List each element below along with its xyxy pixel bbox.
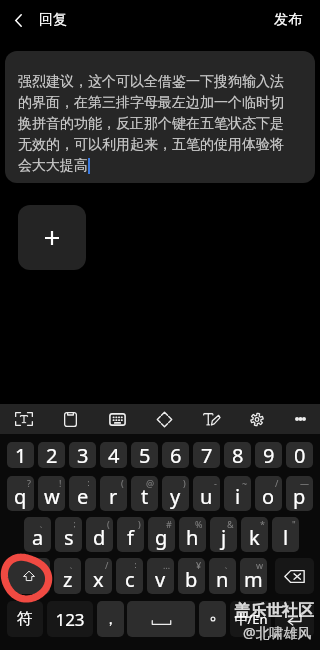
button[interactable]: ： — [116, 558, 143, 594]
button[interactable]: 0 — [286, 442, 313, 468]
staticText: ， — [103, 610, 118, 629]
button[interactable]: Add image — [18, 205, 86, 270]
button[interactable]: Period — [199, 601, 226, 637]
staticText: d — [93, 524, 106, 551]
staticText: 3 — [77, 442, 89, 468]
button[interactable]: … — [147, 558, 174, 594]
staticText: v — [155, 566, 166, 593]
button[interactable]: 123 — [47, 601, 93, 637]
staticText: k — [249, 524, 260, 551]
staticText: 、 — [224, 559, 233, 570]
button[interactable]: @ — [131, 476, 158, 511]
staticText: ( — [107, 518, 110, 530]
button[interactable]: # — [148, 517, 175, 552]
button[interactable]: 5 — [131, 442, 158, 468]
staticText: ¥ — [196, 559, 202, 571]
staticText: 8 — [232, 442, 244, 468]
button[interactable]: / — [255, 476, 282, 511]
staticText: — — [300, 477, 310, 489]
button[interactable]: Text recognition — [7, 404, 41, 434]
button[interactable]: 6 — [162, 442, 189, 468]
staticText: ： — [131, 559, 140, 570]
staticText: h — [186, 524, 199, 551]
staticText: 中/En — [234, 610, 268, 628]
button[interactable]: 符 — [7, 601, 43, 637]
button[interactable]: & — [210, 517, 237, 552]
button[interactable]: — — [286, 476, 313, 511]
staticText: ( — [121, 477, 124, 489]
button[interactable]: More — [283, 404, 317, 434]
button[interactable]: ( — [86, 517, 113, 552]
button[interactable]: 发布 — [260, 3, 320, 37]
button[interactable]: 1 — [7, 442, 34, 468]
staticText: " — [292, 518, 296, 530]
button[interactable]: 8 — [224, 442, 251, 468]
staticText: 强烈建议，这个可以全借鉴一下搜狗输入法 — [18, 73, 284, 91]
button[interactable]: ， — [97, 601, 124, 637]
button[interactable]: ( — [100, 476, 127, 511]
button[interactable]: 、 — [24, 517, 51, 552]
staticText: a — [32, 524, 44, 551]
button[interactable]: ! — [38, 476, 65, 511]
button[interactable]: ) — [162, 476, 189, 511]
staticText: y — [170, 483, 181, 510]
button[interactable]: 4 — [100, 442, 127, 468]
staticText: 5 — [139, 442, 151, 468]
staticText: i — [235, 483, 241, 510]
staticText: 符 — [17, 609, 33, 629]
staticText: l — [283, 524, 289, 551]
button[interactable]: 、 — [54, 558, 81, 594]
staticText: j — [221, 524, 227, 551]
button[interactable]: 7 — [193, 442, 220, 468]
staticText: w — [256, 559, 264, 571]
staticText: o — [262, 483, 275, 510]
button[interactable]: Shift — [7, 558, 50, 594]
button[interactable]: w — [240, 558, 267, 594]
staticText: 4 — [108, 442, 120, 468]
button[interactable]: Handwriting — [194, 404, 228, 434]
button[interactable]: ： — [69, 476, 96, 511]
button[interactable]: Space — [127, 601, 195, 637]
staticText: @北啸雄风 — [243, 623, 312, 642]
staticText: 发布 — [274, 11, 302, 29]
staticText: * — [260, 518, 265, 530]
button[interactable]: ~ — [224, 476, 251, 511]
staticText: 0 — [294, 442, 306, 468]
staticText: @ — [146, 477, 155, 489]
staticText: - — [214, 477, 217, 489]
staticText: 会大大提高 — [18, 157, 88, 175]
button[interactable]: Settings — [240, 404, 274, 434]
staticText: ； — [70, 518, 79, 529]
button[interactable]: % — [179, 517, 206, 552]
button[interactable]: Back — [0, 2, 36, 38]
button[interactable]: / — [85, 558, 112, 594]
staticText: 2 — [46, 442, 58, 468]
staticText: e — [77, 483, 89, 510]
button[interactable]: - — [193, 476, 220, 511]
staticText: r — [109, 483, 118, 510]
button[interactable]: 3 — [69, 442, 96, 468]
staticText: m — [244, 566, 263, 593]
staticText: ! — [59, 477, 62, 489]
button[interactable]: 9 — [255, 442, 282, 468]
staticText: q — [14, 483, 27, 510]
staticText: z — [63, 566, 73, 593]
button[interactable]: Keyboard — [100, 404, 134, 434]
button[interactable]: ； — [55, 517, 82, 552]
button[interactable]: 、 — [209, 558, 236, 594]
button[interactable]: 2 — [38, 442, 65, 468]
staticText: 6 — [170, 442, 182, 468]
staticText: 、 — [39, 518, 48, 529]
button[interactable]: Enter — [275, 601, 314, 637]
button[interactable]: * — [241, 517, 268, 552]
button[interactable]: ¥ — [178, 558, 205, 594]
button[interactable]: ? — [7, 476, 34, 511]
button[interactable]: Clipboard — [53, 404, 87, 434]
button[interactable]: " — [272, 517, 299, 552]
button[interactable]: 中/En — [230, 601, 271, 637]
button[interactable]: ) — [117, 517, 144, 552]
staticText: ) — [183, 477, 186, 489]
button[interactable]: 强烈建议，这个可以全借鉴一下搜狗输入法 — [5, 51, 315, 183]
button[interactable]: Backspace — [275, 558, 314, 594]
button[interactable]: Move cursor — [147, 404, 181, 434]
